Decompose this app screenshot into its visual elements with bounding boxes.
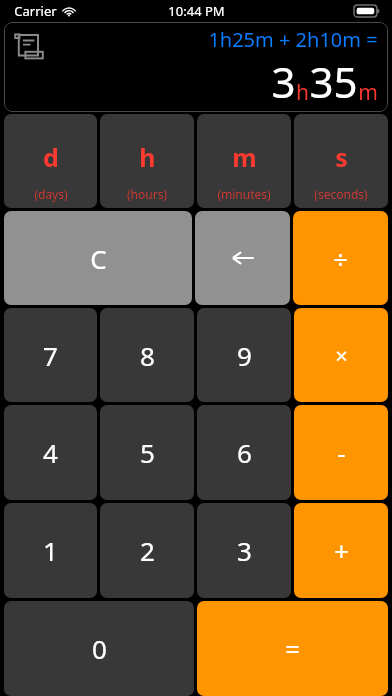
button[interactable]: + [294,503,388,598]
button[interactable]: 7 [4,308,97,402]
staticText: 35 [309,53,358,110]
button[interactable]: C [4,211,192,305]
staticText: h [296,78,309,107]
staticText: 3 [271,53,296,110]
button[interactable]: m [197,114,291,208]
staticText: 7 [43,338,58,373]
staticText: (seconds) [314,186,368,202]
button[interactable]: s [294,114,388,208]
button[interactable]: Backspace [195,211,290,305]
staticText: (minutes) [217,186,271,202]
button[interactable]: 6 [197,405,291,500]
button[interactable]: = [197,601,388,696]
button[interactable]: d [4,114,97,208]
button[interactable]: h [100,114,194,208]
staticText: 2 [140,533,155,568]
button[interactable]: 5 [100,405,194,500]
staticText: 4 [43,435,58,470]
staticText: 3 [237,533,252,568]
staticText: 1 [43,533,58,568]
staticText: ÷ [333,241,348,276]
staticText: × [335,340,348,370]
staticText: 5 [140,435,155,470]
staticText: 1h25m + 2h10m = [208,26,378,53]
button[interactable]: 1 [4,503,97,598]
button[interactable]: 3 [197,503,291,598]
button[interactable]: 0 [4,601,194,696]
staticText: m [358,78,378,107]
staticText: 9 [237,338,252,373]
staticText: s [335,140,348,174]
staticText: - [337,435,346,470]
staticText: + [334,533,349,568]
staticText: (hours) [127,186,167,202]
staticText: C [90,241,107,276]
button[interactable]: 2 [100,503,194,598]
button[interactable]: History [12,30,46,64]
staticText: 8 [140,338,155,373]
staticText: Carrier [14,2,57,20]
staticText: (days) [34,186,68,202]
staticText: 6 [237,435,252,470]
button[interactable]: × [294,308,388,402]
button[interactable]: 8 [100,308,194,402]
button[interactable]: 9 [197,308,291,402]
staticText: h [139,140,156,174]
staticText: d [43,140,59,174]
staticText: 0 [92,631,107,666]
staticText: m [232,140,257,174]
button[interactable]: 4 [4,405,97,500]
button[interactable]: - [294,405,388,500]
button[interactable]: ÷ [293,211,388,305]
staticText: = [285,631,300,666]
staticText: 10:44 PM [168,2,225,20]
